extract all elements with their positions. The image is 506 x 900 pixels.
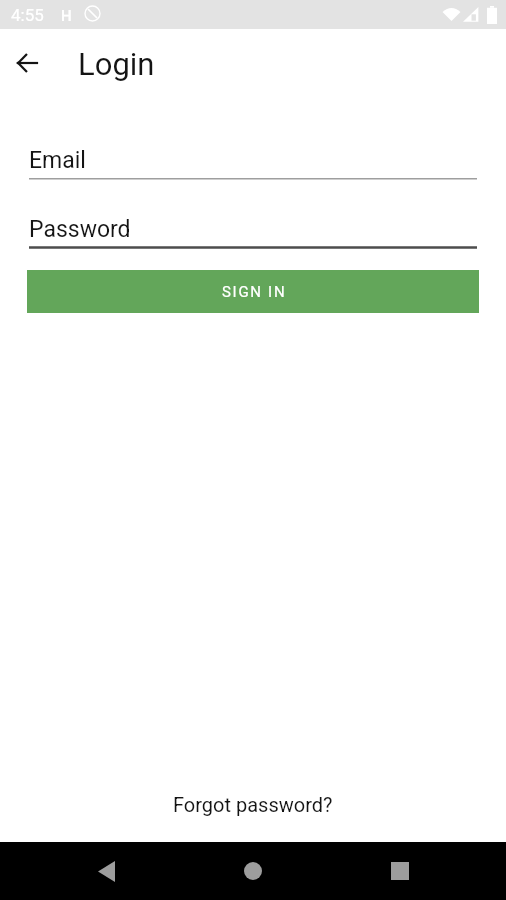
staticText: H <box>61 7 72 25</box>
staticText: Email <box>29 147 86 174</box>
staticText: SIGN IN <box>222 283 287 301</box>
staticText: 4:55 <box>11 5 44 25</box>
button[interactable]: Forgot password? <box>173 793 333 816</box>
button[interactable]: Recent apps <box>376 847 424 895</box>
button[interactable]: Back <box>82 847 130 895</box>
staticText: Password <box>29 216 131 243</box>
button[interactable]: Back <box>8 44 46 82</box>
button[interactable]: Home <box>229 847 277 895</box>
button[interactable]: SIGN IN <box>27 270 479 313</box>
staticText: Login <box>78 46 155 82</box>
